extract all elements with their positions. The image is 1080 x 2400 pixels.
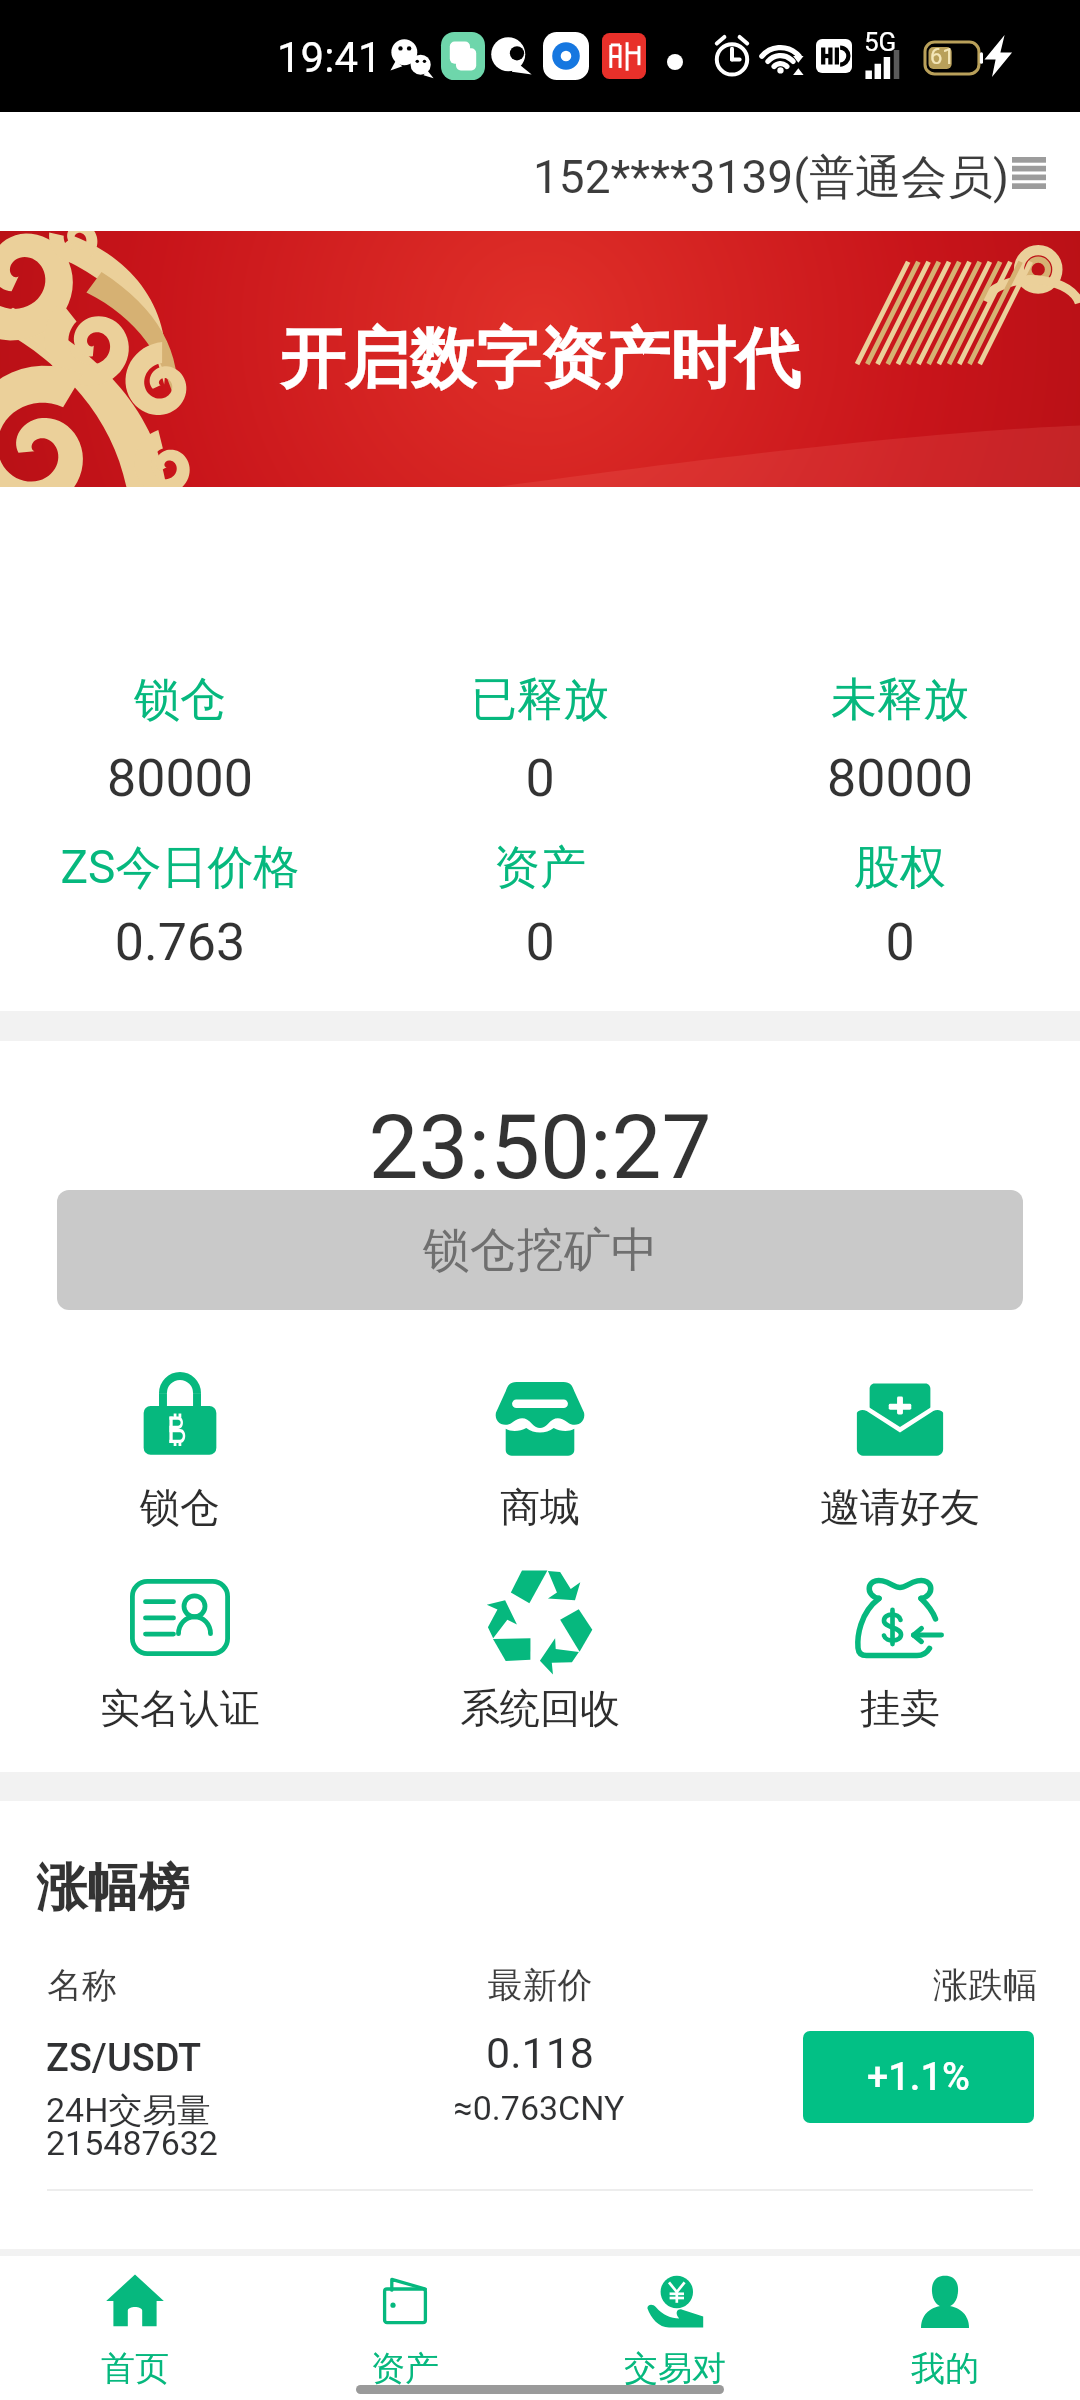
staticText: 开启数字资产时代 [280, 318, 800, 400]
staticText: 已释放 [360, 671, 720, 729]
staticText: 0.763 [0, 912, 360, 973]
staticText: +1.1% [867, 2055, 970, 2100]
button[interactable] [540, 2256, 810, 2390]
staticText: 实名认证 [0, 1683, 360, 1733]
staticText: 挂卖 [720, 1683, 1080, 1733]
staticText: 涨幅榜 [36, 1856, 189, 1920]
button[interactable]: 锁仓 [0, 1357, 360, 1540]
staticText: 最新价 [390, 1963, 690, 2007]
staticText: ZS/USDT [46, 2036, 201, 2081]
staticText: 我的 [810, 2347, 1080, 2390]
button[interactable] [0, 2256, 270, 2390]
staticText: 0 [360, 748, 720, 809]
staticText: 名称 [47, 1963, 117, 2007]
staticText: 61 [930, 44, 955, 70]
button[interactable]: 开启数字资产时代 [0, 231, 1080, 487]
staticText: 0 [720, 912, 1080, 973]
button[interactable]: 系统回收 [360, 1552, 720, 1741]
staticText: 215487632 [46, 2123, 218, 2163]
button[interactable]: +1.1% [803, 2031, 1034, 2123]
staticText: 80000 [0, 748, 360, 809]
staticText: ≈0.763CNY [339, 2088, 739, 2128]
button[interactable]: 商城 [360, 1359, 720, 1540]
staticText: 152****3139(普通会员) [533, 149, 1009, 207]
button[interactable]: 锁仓挖矿中 [57, 1190, 1023, 1310]
button[interactable]: 152****3139(普通会员) [533, 149, 1009, 207]
staticText: 资产 [360, 839, 720, 897]
button[interactable] [810, 2256, 1080, 2390]
button[interactable]: 挂卖 [720, 1554, 1080, 1741]
staticText: 锁仓 [0, 671, 360, 729]
button[interactable] [270, 2256, 540, 2390]
button[interactable] [0, 2014, 1080, 2190]
staticText: 5G [864, 27, 897, 57]
staticText: 80000 [720, 748, 1080, 809]
staticText: 锁仓挖矿中 [423, 1221, 658, 1280]
button[interactable]: 邀请好友 [720, 1359, 1080, 1540]
staticText: 系统回收 [360, 1683, 720, 1733]
staticText: 涨跌幅 [933, 1963, 1038, 2007]
button[interactable]: 实名认证 [0, 1563, 360, 1741]
staticText: 股权 [720, 839, 1080, 897]
staticText: 锁仓 [0, 1482, 360, 1532]
staticText: 0.118 [340, 2028, 740, 2078]
staticText: 19:41 [277, 33, 382, 82]
staticText: 未释放 [720, 671, 1080, 729]
staticText: 邀请好友 [720, 1482, 1080, 1532]
staticText: 0 [360, 912, 720, 973]
staticText: 交易对 [540, 2347, 810, 2390]
staticText: 23:50:27 [190, 1095, 890, 1199]
staticText: ZS今日价格 [0, 839, 360, 897]
button[interactable]: Menu [1012, 157, 1046, 189]
staticText: 资产 [270, 2347, 540, 2390]
staticText: 商城 [360, 1482, 720, 1532]
staticText: 首页 [0, 2347, 270, 2390]
staticText: 24H交易量 [46, 2089, 211, 2132]
